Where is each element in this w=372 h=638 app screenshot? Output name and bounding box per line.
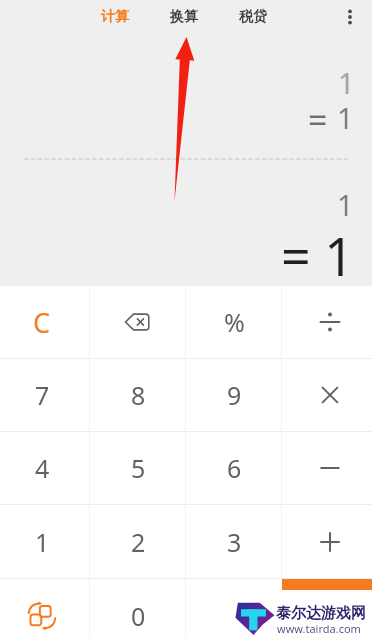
button[interactable]: Minus [282,432,372,504]
staticText: 3 [227,525,242,559]
staticText: www.tairda.com [277,621,361,636]
button[interactable]: 4 [0,432,90,504]
button[interactable]: Unit converter [0,579,90,638]
staticText: 税贷 [239,8,267,26]
staticText: = [322,597,338,634]
staticText: 4 [35,451,50,485]
staticText: = [308,97,328,143]
button[interactable]: 6 [186,432,282,504]
button[interactable]: % [186,286,282,358]
staticText: = 1 [281,220,355,291]
button[interactable]: Backspace [90,286,186,358]
button[interactable]: C [0,286,90,358]
button[interactable]: 2 [90,505,186,578]
button[interactable]: Plus [282,505,372,578]
button[interactable]: 9 [186,359,282,431]
button[interactable]: 3 [186,505,282,578]
staticText: 1 [337,98,354,137]
button[interactable]: Multiply [282,359,372,431]
button[interactable]: Divide [282,286,372,358]
staticText: 1 [35,525,50,559]
button[interactable]: 税贷 [236,0,270,34]
staticText: % [224,305,245,339]
staticText: 泰尔达游戏网 [276,604,366,623]
staticText: 计算 [101,8,129,26]
staticText: 6 [227,451,242,485]
staticText: 9 [227,378,242,412]
staticText: . [231,599,238,633]
button[interactable]: 8 [90,359,186,431]
button[interactable]: Equals [282,579,372,638]
staticText: 7 [35,378,50,412]
button[interactable]: 计算 [98,0,132,34]
button[interactable]: 0 [90,579,186,638]
button[interactable]: . [186,579,282,638]
button[interactable]: 7 [0,359,90,431]
staticText: 8 [131,378,146,412]
staticText: 5 [131,451,146,485]
button[interactable]: 1 [0,505,90,578]
button[interactable]: More options [328,0,372,34]
button[interactable]: 换算 [167,0,201,34]
button[interactable]: 5 [90,432,186,504]
staticText: 换算 [170,8,198,26]
staticText: 1 [337,185,354,224]
staticText: 2 [131,525,146,559]
staticText: 0 [131,599,146,633]
staticText: 1 [338,63,355,102]
staticText: C [33,304,51,341]
